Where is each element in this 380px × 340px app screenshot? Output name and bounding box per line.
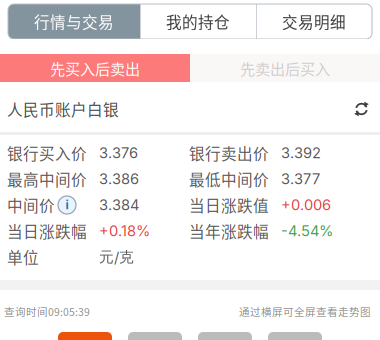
button[interactable]: 委托 — [198, 332, 252, 340]
staticText: 最高中间价 — [7, 168, 87, 190]
button[interactable]: 卖出 — [128, 332, 182, 340]
staticText: 元/克 — [99, 248, 134, 266]
staticText: 先买入后卖出 — [50, 57, 140, 79]
staticText: i — [65, 198, 68, 212]
staticText: 3.392 — [281, 144, 321, 162]
staticText: +0.006 — [281, 196, 331, 214]
staticText: 银行买入价 — [7, 142, 87, 164]
staticText: 3.386 — [99, 170, 139, 188]
button[interactable]: 交易明细 — [256, 4, 372, 39]
button[interactable]: 走势 — [268, 332, 322, 340]
staticText: 银行卖出价 — [189, 142, 269, 164]
staticText: +0.18% — [99, 222, 150, 240]
staticText: 先卖出后买入 — [240, 57, 330, 79]
staticText: 当日涨跌值 — [189, 194, 269, 216]
button[interactable]: 买入 — [58, 332, 112, 340]
staticText: 中间价 — [7, 194, 55, 216]
staticText: 当日涨跌幅 — [7, 220, 87, 242]
staticText: 最低中间价 — [189, 168, 269, 190]
staticText: 人民币账户白银 — [7, 98, 119, 120]
button[interactable]: 行情与交易 — [8, 4, 140, 39]
staticText: 查询时间09:05:39 — [4, 304, 90, 319]
staticText: 当年涨跌幅 — [189, 220, 269, 242]
staticText: 3.384 — [99, 196, 139, 214]
button[interactable]: 我的持仓 — [140, 4, 256, 39]
button[interactable]: 先买入后卖出 — [0, 54, 190, 82]
staticText: 我的持仓 — [166, 10, 230, 33]
staticText: -4.54% — [281, 222, 333, 240]
staticText: 单位 — [7, 246, 39, 268]
button[interactable]: 刷新 — [354, 101, 369, 116]
staticText: 3.376 — [99, 144, 138, 162]
staticText: 行情与交易 — [34, 10, 114, 33]
staticText: 交易明细 — [282, 10, 346, 33]
staticText: 通过横屏可全屏查看走势图 — [239, 304, 371, 319]
button[interactable]: 先卖出后买入 — [190, 54, 380, 82]
staticText: 3.377 — [281, 170, 320, 188]
